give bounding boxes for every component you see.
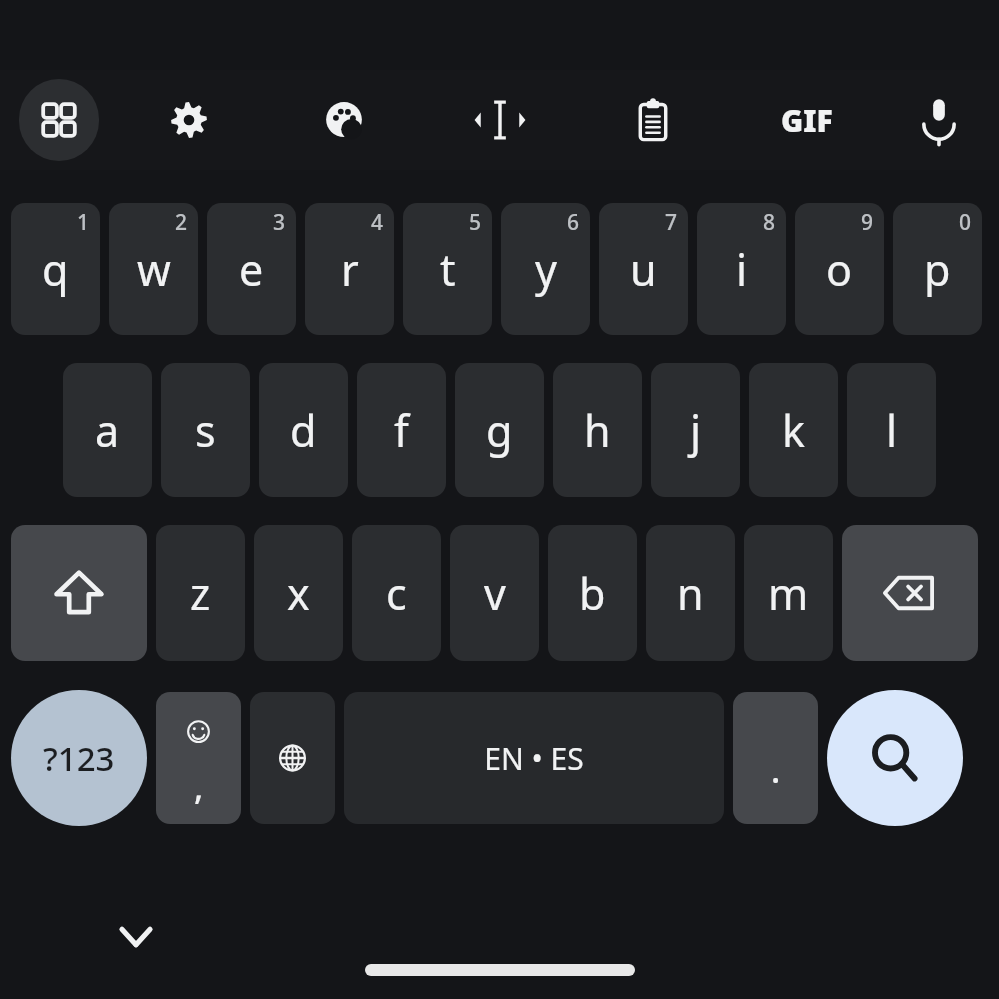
button[interactable]: Shift [11, 525, 147, 661]
staticText: l [886, 401, 898, 460]
button[interactable]: p [893, 203, 982, 335]
staticText: 7 [665, 208, 678, 237]
staticText: b [579, 564, 606, 623]
staticText: f [394, 401, 409, 460]
button[interactable]: m [744, 525, 833, 661]
button[interactable]: l [847, 363, 936, 497]
staticText: s [195, 401, 216, 460]
staticText: x [287, 564, 310, 623]
button[interactable]: o [795, 203, 884, 335]
staticText: m [768, 564, 809, 623]
button[interactable]: f [357, 363, 446, 497]
button[interactable]: Voice input [899, 79, 979, 161]
staticText: n [677, 564, 704, 623]
button[interactable]: j [651, 363, 740, 497]
button[interactable]: ?123 [11, 690, 147, 826]
staticText: 0 [959, 208, 972, 237]
staticText: e [239, 240, 264, 299]
button[interactable]: q [11, 203, 100, 335]
button[interactable]: u [599, 203, 688, 335]
button[interactable]: h [553, 363, 642, 497]
staticText: c [386, 564, 407, 623]
button[interactable]: a [63, 363, 152, 497]
staticText: d [290, 401, 317, 460]
staticText: 5 [469, 208, 482, 237]
staticText: 6 [567, 208, 580, 237]
staticText: v [484, 564, 506, 623]
staticText: j [690, 401, 702, 460]
button[interactable]: Clipboard [613, 79, 693, 161]
button[interactable]: n [646, 525, 735, 661]
button[interactable]: k [749, 363, 838, 497]
staticText: h [584, 401, 611, 460]
staticText: y [535, 240, 557, 299]
button[interactable]: z [156, 525, 245, 661]
button[interactable]: Hide keyboard [96, 897, 176, 977]
staticText: , [194, 764, 204, 810]
button[interactable]: b [548, 525, 637, 661]
button[interactable]: e [207, 203, 296, 335]
staticText: g [486, 401, 513, 460]
button[interactable]: c [352, 525, 441, 661]
button[interactable]: Settings [149, 79, 229, 161]
button[interactable]: Open features [19, 79, 99, 161]
button[interactable]: s [161, 363, 250, 497]
button[interactable]: Backspace [842, 525, 978, 661]
button[interactable]: x [254, 525, 343, 661]
staticText: p [924, 240, 951, 299]
button[interactable]: v [450, 525, 539, 661]
button[interactable]: Search [827, 690, 963, 826]
staticText: w [137, 240, 171, 299]
button[interactable]: GIF [767, 79, 847, 161]
button[interactable]: d [259, 363, 348, 497]
button[interactable]: Emoji [156, 692, 241, 824]
staticText: r [341, 240, 359, 299]
button[interactable]: g [455, 363, 544, 497]
staticText: k [782, 401, 805, 460]
staticText: . [771, 747, 781, 793]
button[interactable]: t [403, 203, 492, 335]
button[interactable]: i [697, 203, 786, 335]
button[interactable]: Text editing [460, 79, 540, 161]
button[interactable]: EN • ES [344, 692, 724, 824]
button[interactable]: r [305, 203, 394, 335]
staticText: GIF [781, 100, 833, 141]
staticText: t [440, 240, 456, 299]
staticText: 8 [763, 208, 776, 237]
staticText: i [736, 240, 748, 299]
button[interactable]: y [501, 203, 590, 335]
staticText: 4 [371, 208, 384, 237]
button[interactable]: Change language [250, 692, 335, 824]
staticText: ?123 [43, 736, 115, 781]
staticText: 1 [77, 208, 90, 237]
button[interactable]: w [109, 203, 198, 335]
button[interactable]: Themes [304, 79, 384, 161]
staticText: a [95, 401, 120, 460]
staticText: 2 [175, 208, 188, 237]
staticText: z [190, 564, 211, 623]
staticText: u [630, 240, 657, 299]
button[interactable]: . [733, 692, 818, 824]
staticText: 9 [861, 208, 874, 237]
staticText: EN • ES [484, 738, 584, 779]
staticText: 3 [273, 208, 286, 237]
staticText: q [42, 240, 69, 299]
staticText: o [826, 240, 853, 299]
